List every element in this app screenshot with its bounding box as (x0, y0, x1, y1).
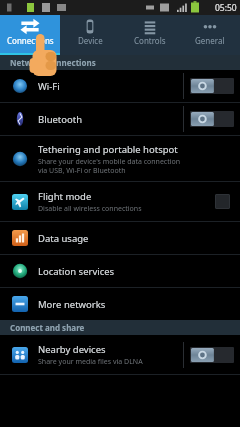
staticText: Share your device's mobile data connecti… (38, 157, 181, 175)
button[interactable]: Tethering and portable hotspot (0, 136, 240, 181)
button[interactable]: Bluetooth (0, 103, 240, 135)
staticText: Network connections (10, 57, 96, 68)
button[interactable]: Wi-Fi (0, 70, 240, 102)
staticText: Nearby devices (38, 343, 106, 356)
staticText: Controls (134, 35, 166, 46)
button[interactable]: Device (60, 15, 120, 55)
staticText: Data usage (38, 232, 89, 245)
staticText: Disable all wireless connections (38, 204, 142, 214)
staticText: Device (78, 35, 103, 46)
button[interactable]: Connections (0, 15, 60, 55)
staticText: Tethering and portable hotspot (38, 143, 178, 156)
button[interactable]: Toggle off (190, 347, 234, 363)
button[interactable]: Nearby devices (0, 335, 240, 374)
button[interactable]: General (180, 15, 240, 55)
staticText: Connect and share (10, 322, 85, 333)
staticText: General (195, 35, 225, 46)
staticText: Wi-Fi (38, 80, 60, 93)
staticText: Location services (38, 265, 115, 278)
button[interactable]: Data usage (0, 222, 240, 254)
staticText: Connections (7, 35, 54, 46)
button[interactable]: Flight mode checkbox (215, 194, 230, 209)
button[interactable]: Toggle off (190, 111, 234, 127)
button[interactable]: Location services (0, 255, 240, 287)
button[interactable]: Controls (120, 15, 180, 55)
staticText: More networks (38, 298, 106, 311)
button[interactable]: Flight mode (0, 182, 240, 221)
staticText: Bluetooth (38, 113, 83, 126)
staticText: Flight mode (38, 190, 92, 203)
staticText: 05:50 (215, 2, 237, 14)
button[interactable]: More networks (0, 288, 240, 320)
staticText: Share your media files via DLNA (38, 357, 143, 367)
button[interactable]: Toggle off (190, 78, 234, 94)
